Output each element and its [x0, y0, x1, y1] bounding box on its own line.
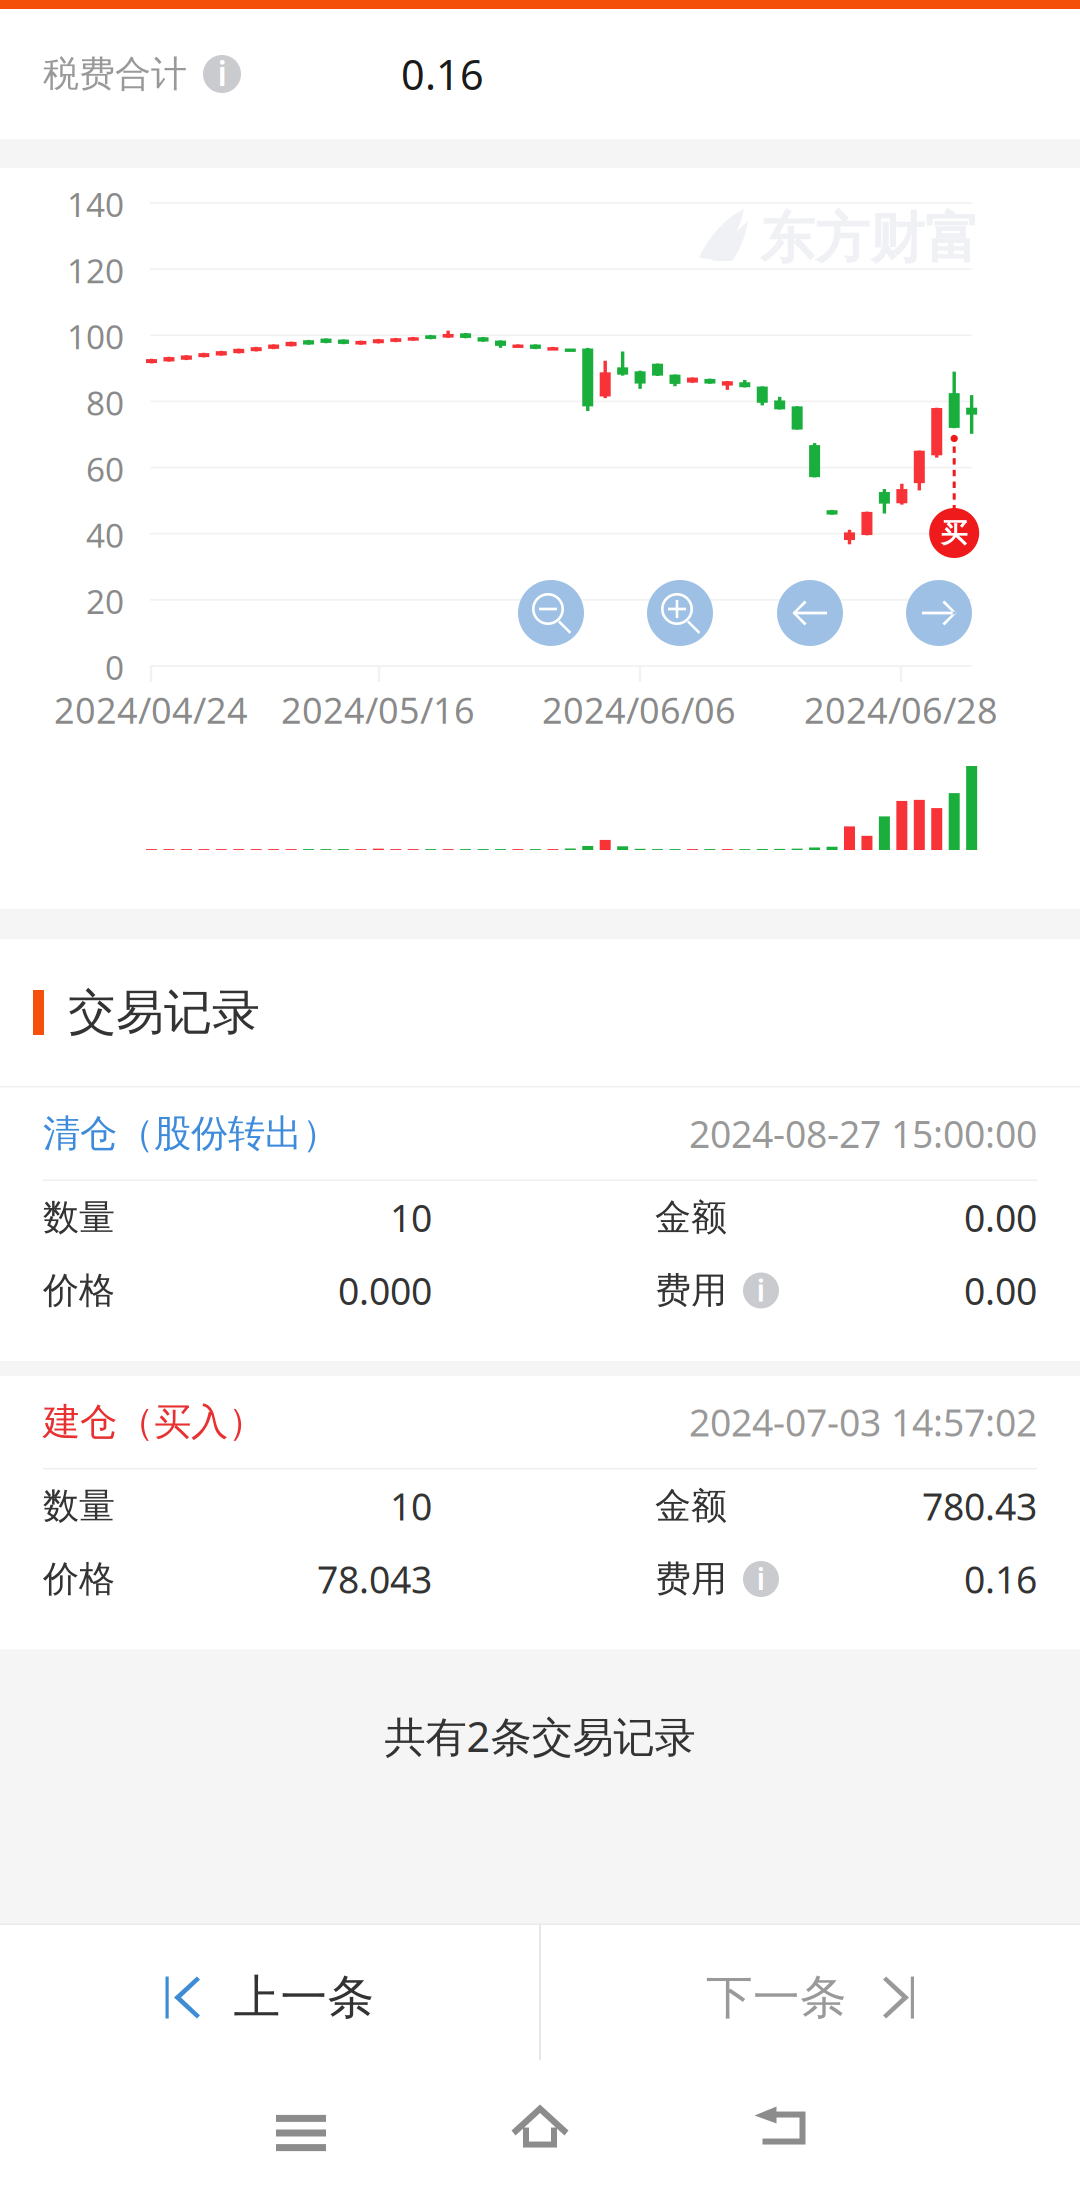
staticText: 费用 [655, 1268, 727, 1313]
staticText: 买 [941, 517, 968, 549]
button[interactable]: 下一条 [540, 1925, 1080, 2060]
staticText: 10 [390, 1481, 432, 1531]
staticText: 2024-07-03 14:57:02 [689, 1397, 1037, 1447]
staticText: 0.00 [964, 1266, 1037, 1315]
staticText: i [756, 1558, 765, 1598]
staticText: 交易记录 [68, 983, 260, 1042]
staticText: 费用 [655, 1557, 727, 1601]
staticText: 金额 [655, 1195, 727, 1240]
staticText: 80 [86, 380, 124, 425]
button[interactable]: Zoom out [518, 580, 584, 646]
staticText: 2024/06/28 [804, 686, 998, 734]
staticText: 100 [67, 314, 124, 359]
staticText: 税费合计 [43, 52, 187, 96]
button[interactable]: Back [700, 2060, 860, 2192]
button[interactable]: Recents [221, 2067, 381, 2192]
staticText: 金额 [655, 1484, 727, 1528]
staticText: i [756, 1269, 765, 1310]
staticText: 0.16 [401, 47, 484, 101]
button[interactable]: Home [460, 2060, 620, 2192]
staticText: 60 [86, 447, 124, 491]
staticText: 140 [67, 182, 124, 226]
staticText: 建仓（买入） [43, 1399, 265, 1445]
staticText: 上一条 [233, 1969, 374, 2026]
staticText: 0 [105, 645, 124, 689]
staticText: 价格 [43, 1557, 115, 1601]
staticText: 东方财富 [760, 205, 980, 272]
staticText: 下一条 [706, 1969, 847, 2026]
staticText: 清仓（股份转出） [43, 1111, 339, 1156]
button[interactable]: Scroll right [906, 580, 972, 646]
button[interactable]: 上一条 [0, 1925, 540, 2060]
staticText: 78.043 [317, 1554, 432, 1604]
staticText: 共有2条交易记录 [384, 1708, 695, 1763]
staticText: 0.000 [338, 1266, 432, 1315]
staticText: 40 [86, 513, 124, 557]
staticText: i [217, 51, 226, 95]
staticText: 数量 [43, 1484, 115, 1528]
staticText: 20 [86, 579, 124, 623]
staticText: 10 [390, 1193, 432, 1242]
button[interactable]: Scroll left [777, 580, 843, 646]
button[interactable]: Zoom in [647, 580, 713, 646]
staticText: 0.00 [964, 1193, 1037, 1242]
staticText: 120 [67, 248, 124, 292]
staticText: 2024/04/24 [54, 686, 248, 734]
staticText: 780.43 [922, 1481, 1037, 1531]
staticText: 数量 [43, 1195, 115, 1240]
staticText: 2024/05/16 [281, 686, 475, 734]
staticText: 0.16 [964, 1554, 1037, 1604]
staticText: 2024/06/06 [542, 686, 736, 734]
staticText: 价格 [43, 1268, 115, 1313]
staticText: 2024-08-27 15:00:00 [689, 1109, 1037, 1158]
